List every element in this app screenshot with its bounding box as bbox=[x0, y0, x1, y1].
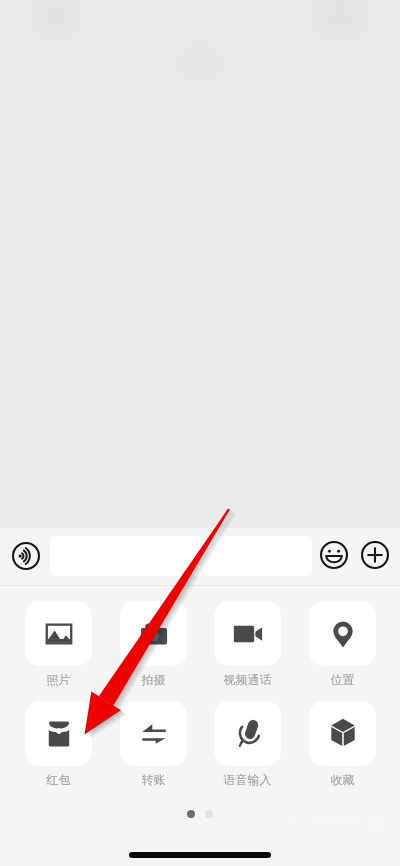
button[interactable]: More options bbox=[357, 537, 393, 573]
button[interactable]: 拍摄 bbox=[120, 601, 187, 687]
button[interactable] bbox=[50, 536, 312, 576]
staticText: 红包 bbox=[25, 772, 92, 787]
button[interactable]: 语音输入 bbox=[214, 701, 281, 787]
staticText: 照片 bbox=[25, 672, 92, 687]
staticText: 收藏 bbox=[309, 772, 376, 787]
button[interactable]: 收藏 bbox=[309, 701, 376, 787]
button[interactable]: Voice input bbox=[6, 536, 45, 575]
button[interactable]: 位置 bbox=[309, 601, 376, 687]
staticText: 语音输入 bbox=[214, 772, 281, 787]
staticText: 视频通话 bbox=[214, 672, 281, 687]
staticText: 转账 bbox=[120, 772, 187, 787]
button[interactable]: 照片 bbox=[25, 601, 92, 687]
staticText: 拍摄 bbox=[120, 672, 187, 687]
staticText: 位置 bbox=[309, 672, 376, 687]
button[interactable]: 视频通话 bbox=[214, 601, 281, 687]
button[interactable]: 转账 bbox=[120, 701, 187, 787]
button[interactable]: Emoji bbox=[316, 537, 352, 573]
button[interactable]: 红包 bbox=[25, 701, 92, 787]
